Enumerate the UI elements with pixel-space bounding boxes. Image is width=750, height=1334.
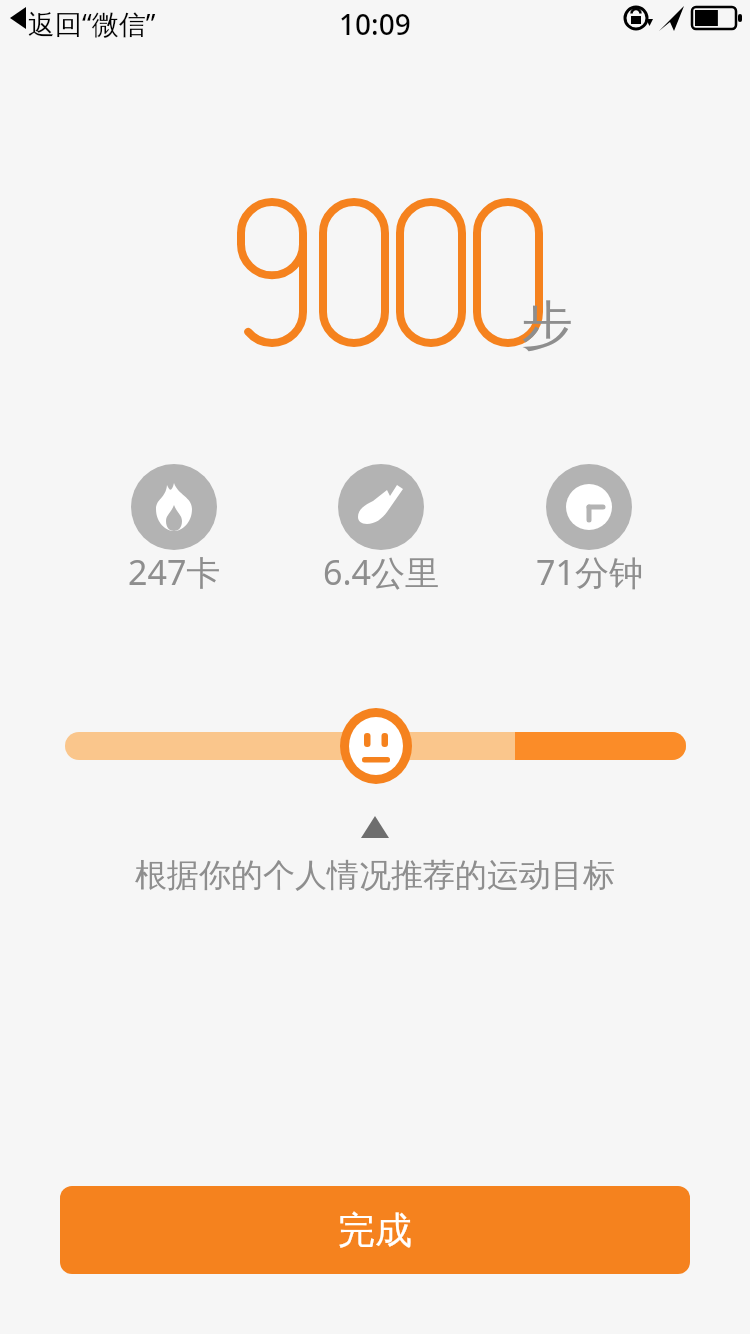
staticText: 返回“微信”: [28, 5, 156, 42]
button[interactable]: 完成: [60, 1186, 690, 1274]
staticText: 10:09: [339, 5, 411, 43]
staticText: 完成: [338, 1207, 412, 1254]
button[interactable]: 6.4公里: [291, 460, 471, 595]
staticText: 71分钟: [536, 549, 643, 595]
staticText: 6.4公里: [323, 549, 440, 595]
staticText: 步: [521, 293, 573, 359]
button[interactable]: 247卡: [84, 460, 264, 595]
button[interactable]: 返回微信: [0, 0, 160, 40]
button[interactable]: 71分钟: [499, 460, 679, 595]
button[interactable]: 目标滑块: [340, 709, 413, 785]
staticText: 根据你的个人情况推荐的运动目标: [135, 855, 615, 895]
staticText: 247卡: [128, 549, 221, 595]
